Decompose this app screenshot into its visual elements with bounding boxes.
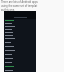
- button[interactable]: [4, 31, 36, 34]
- button[interactable]: [4, 40, 36, 44]
- button[interactable]: [4, 56, 36, 60]
- button[interactable]: [4, 37, 36, 40]
- button[interactable]: [4, 48, 36, 52]
- button[interactable]: [4, 19, 36, 22]
- button[interactable]: [4, 64, 36, 68]
- staticText: using the same set of templat: [1, 4, 38, 8]
- button[interactable]: [4, 34, 36, 37]
- staticText: There are lots of Android apps: [1, 0, 38, 4]
- button[interactable]: [4, 28, 36, 31]
- button[interactable]: [4, 22, 36, 25]
- staticText: as this one.: [1, 8, 15, 12]
- button[interactable]: [4, 25, 36, 28]
- button[interactable]: [4, 44, 36, 48]
- button[interactable]: [4, 68, 36, 72]
- button[interactable]: [4, 60, 36, 64]
- button[interactable]: [4, 52, 36, 56]
